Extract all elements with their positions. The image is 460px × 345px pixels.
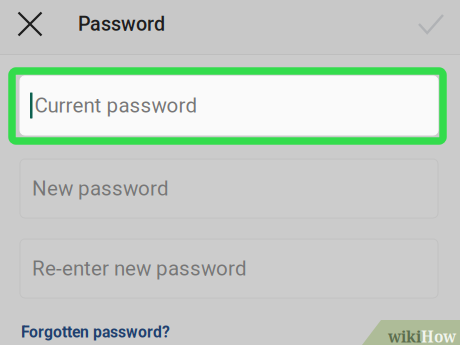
button[interactable]: Save — [410, 0, 452, 48]
staticText: Password — [78, 12, 165, 35]
staticText: New password — [32, 176, 169, 201]
staticText: Current password — [34, 93, 197, 118]
button[interactable]: New password — [20, 159, 438, 218]
staticText: Re-enter new password — [32, 256, 247, 281]
button[interactable]: Forgotten password? — [20, 318, 171, 345]
staticText: Forgotten password? — [21, 323, 170, 341]
staticText: wiki — [388, 326, 421, 345]
button[interactable]: Re-enter new password — [20, 239, 438, 298]
staticText: How — [421, 326, 456, 345]
button[interactable]: Close — [9, 0, 51, 48]
button[interactable]: Current password — [20, 76, 438, 135]
